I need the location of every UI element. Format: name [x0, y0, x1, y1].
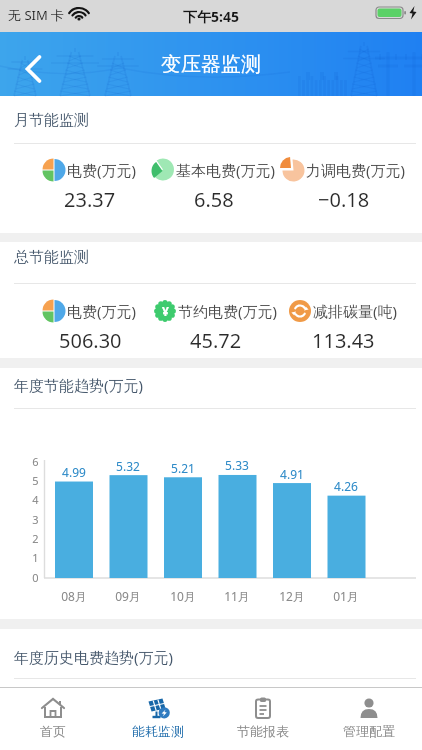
staticText: 0: [32, 570, 39, 585]
staticText: 6.58: [194, 186, 234, 213]
button[interactable]: 力调电费(万元): [264, 159, 422, 213]
button[interactable]: 电费(万元): [10, 300, 170, 354]
staticText: 年度历史电费趋势(万元): [14, 647, 174, 667]
button[interactable]: 减排碳量(吨): [263, 300, 422, 354]
staticText: 首页: [40, 723, 66, 739]
staticText: 4.91: [280, 466, 304, 482]
staticText: 4: [32, 492, 39, 507]
staticText: 09月: [115, 588, 141, 604]
staticText: 能耗监测: [132, 723, 184, 739]
button[interactable]: [24, 54, 44, 84]
staticText: 23.37: [64, 186, 116, 213]
staticText: 无 SIM 卡: [8, 6, 65, 24]
staticText: 5.21: [171, 460, 195, 476]
staticText: 2: [32, 531, 39, 546]
staticText: 月节能监测: [14, 111, 89, 130]
staticText: 08月: [61, 588, 87, 604]
staticText: 01月: [333, 588, 359, 604]
staticText: 3: [32, 512, 39, 527]
staticText: 11月: [224, 588, 250, 604]
staticText: 45.72: [190, 327, 242, 354]
staticText: 4.26: [334, 478, 358, 494]
staticText: 管理配置: [343, 723, 395, 739]
staticText: 变压器监测: [161, 52, 261, 77]
staticText: 电费(万元): [67, 160, 137, 180]
button[interactable]: 能耗监测: [105, 688, 210, 750]
staticText: 5: [32, 473, 39, 488]
staticText: 节能报表: [237, 723, 289, 739]
staticText: 下午5:45: [183, 7, 239, 26]
staticText: 力调电费(万元): [306, 160, 406, 180]
staticText: 506.30: [59, 327, 122, 354]
staticText: ¥: [162, 303, 169, 319]
staticText: 基本电费(万元): [176, 160, 276, 180]
staticText: 10月: [170, 588, 196, 604]
staticText: 年度节能趋势(万元): [14, 375, 144, 395]
staticText: 5.32: [116, 458, 140, 474]
staticText: 12月: [279, 588, 305, 604]
staticText: 5.33: [225, 457, 249, 473]
button[interactable]: 首页: [0, 688, 105, 750]
staticText: 电费(万元): [67, 301, 137, 321]
button[interactable]: 管理配置: [316, 688, 422, 750]
button[interactable]: 基本电费(万元): [134, 159, 294, 213]
button[interactable]: 电费(万元): [10, 159, 170, 213]
staticText: 总节能监测: [14, 248, 89, 267]
staticText: 6: [32, 454, 39, 469]
staticText: 113.43: [312, 327, 375, 354]
button[interactable]: 节能报表: [210, 688, 316, 750]
staticText: 1: [32, 550, 39, 565]
staticText: −0.18: [318, 186, 370, 213]
staticText: 减排碳量(吨): [313, 301, 398, 321]
button[interactable]: ¥: [136, 300, 296, 354]
staticText: 4.99: [62, 464, 86, 480]
staticText: 节约电费(万元): [178, 301, 278, 321]
